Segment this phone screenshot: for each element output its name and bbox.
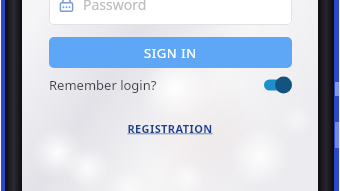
button[interactable]: Password xyxy=(49,0,292,25)
staticText: Password xyxy=(83,0,147,14)
button[interactable]: REGISTRATION xyxy=(121,118,219,139)
button[interactable]: SIGN IN xyxy=(49,37,292,68)
staticText: SIGN IN xyxy=(144,44,197,62)
button[interactable]: Remember login? xyxy=(49,74,292,96)
staticText: Remember login? xyxy=(49,76,157,94)
staticText: REGISTRATION xyxy=(127,121,213,136)
other: Remember login toggle xyxy=(264,76,292,94)
